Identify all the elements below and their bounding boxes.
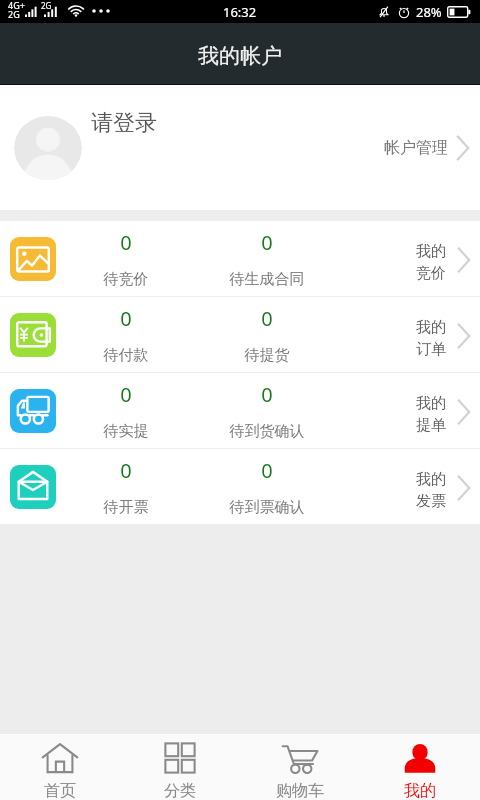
staticText: 16:32 <box>223 3 257 21</box>
staticText: 待付款 <box>66 346 186 365</box>
staticText: 0 <box>197 381 337 408</box>
button[interactable]: Cart <box>240 735 360 800</box>
staticText: 0 <box>66 229 186 256</box>
button[interactable]: 0 <box>0 373 480 448</box>
button[interactable]: Mine <box>360 735 480 800</box>
staticText: 28% <box>416 3 442 21</box>
button[interactable]: 请登录 <box>0 85 480 210</box>
staticText: 我的 <box>416 470 446 489</box>
staticText: 0 <box>197 229 337 256</box>
staticText: 请登录 <box>91 109 157 137</box>
staticText: 待开票 <box>66 498 186 517</box>
staticText: 我的 <box>404 781 436 800</box>
staticText: 我的 <box>416 394 446 413</box>
staticText: 0 <box>66 457 186 484</box>
staticText: 订单 <box>416 340 446 359</box>
button[interactable]: 0 <box>0 449 480 524</box>
staticText: 首页 <box>44 781 76 800</box>
button[interactable]: Home <box>0 735 120 800</box>
staticText: 我的 <box>416 318 446 337</box>
staticText: 0 <box>197 457 337 484</box>
staticText: 2G <box>41 0 52 11</box>
button[interactable]: Categories <box>120 735 240 800</box>
staticText: 待生成合同 <box>197 270 337 289</box>
staticText: 待竞价 <box>66 270 186 289</box>
staticText: 购物车 <box>276 781 324 800</box>
staticText: 0 <box>197 305 337 332</box>
staticText: 待到货确认 <box>197 422 337 441</box>
staticText: 待到票确认 <box>197 498 337 517</box>
staticText: 2G <box>8 8 20 20</box>
staticText: 竞价 <box>416 264 446 283</box>
button[interactable]: 0 <box>0 221 480 296</box>
staticText: 0 <box>66 305 186 332</box>
staticText: 帐户管理 <box>384 138 448 158</box>
staticText: 我的 <box>416 242 446 261</box>
staticText: 待实提 <box>66 422 186 441</box>
staticText: 待提货 <box>197 346 337 365</box>
button[interactable]: 0 <box>0 297 480 372</box>
staticText: 4G+ <box>8 0 25 11</box>
staticText: 提单 <box>416 416 446 435</box>
staticText: 分类 <box>164 781 196 800</box>
staticText: 发票 <box>416 492 446 511</box>
staticText: 我的帐户 <box>198 43 282 69</box>
staticText: 0 <box>66 381 186 408</box>
